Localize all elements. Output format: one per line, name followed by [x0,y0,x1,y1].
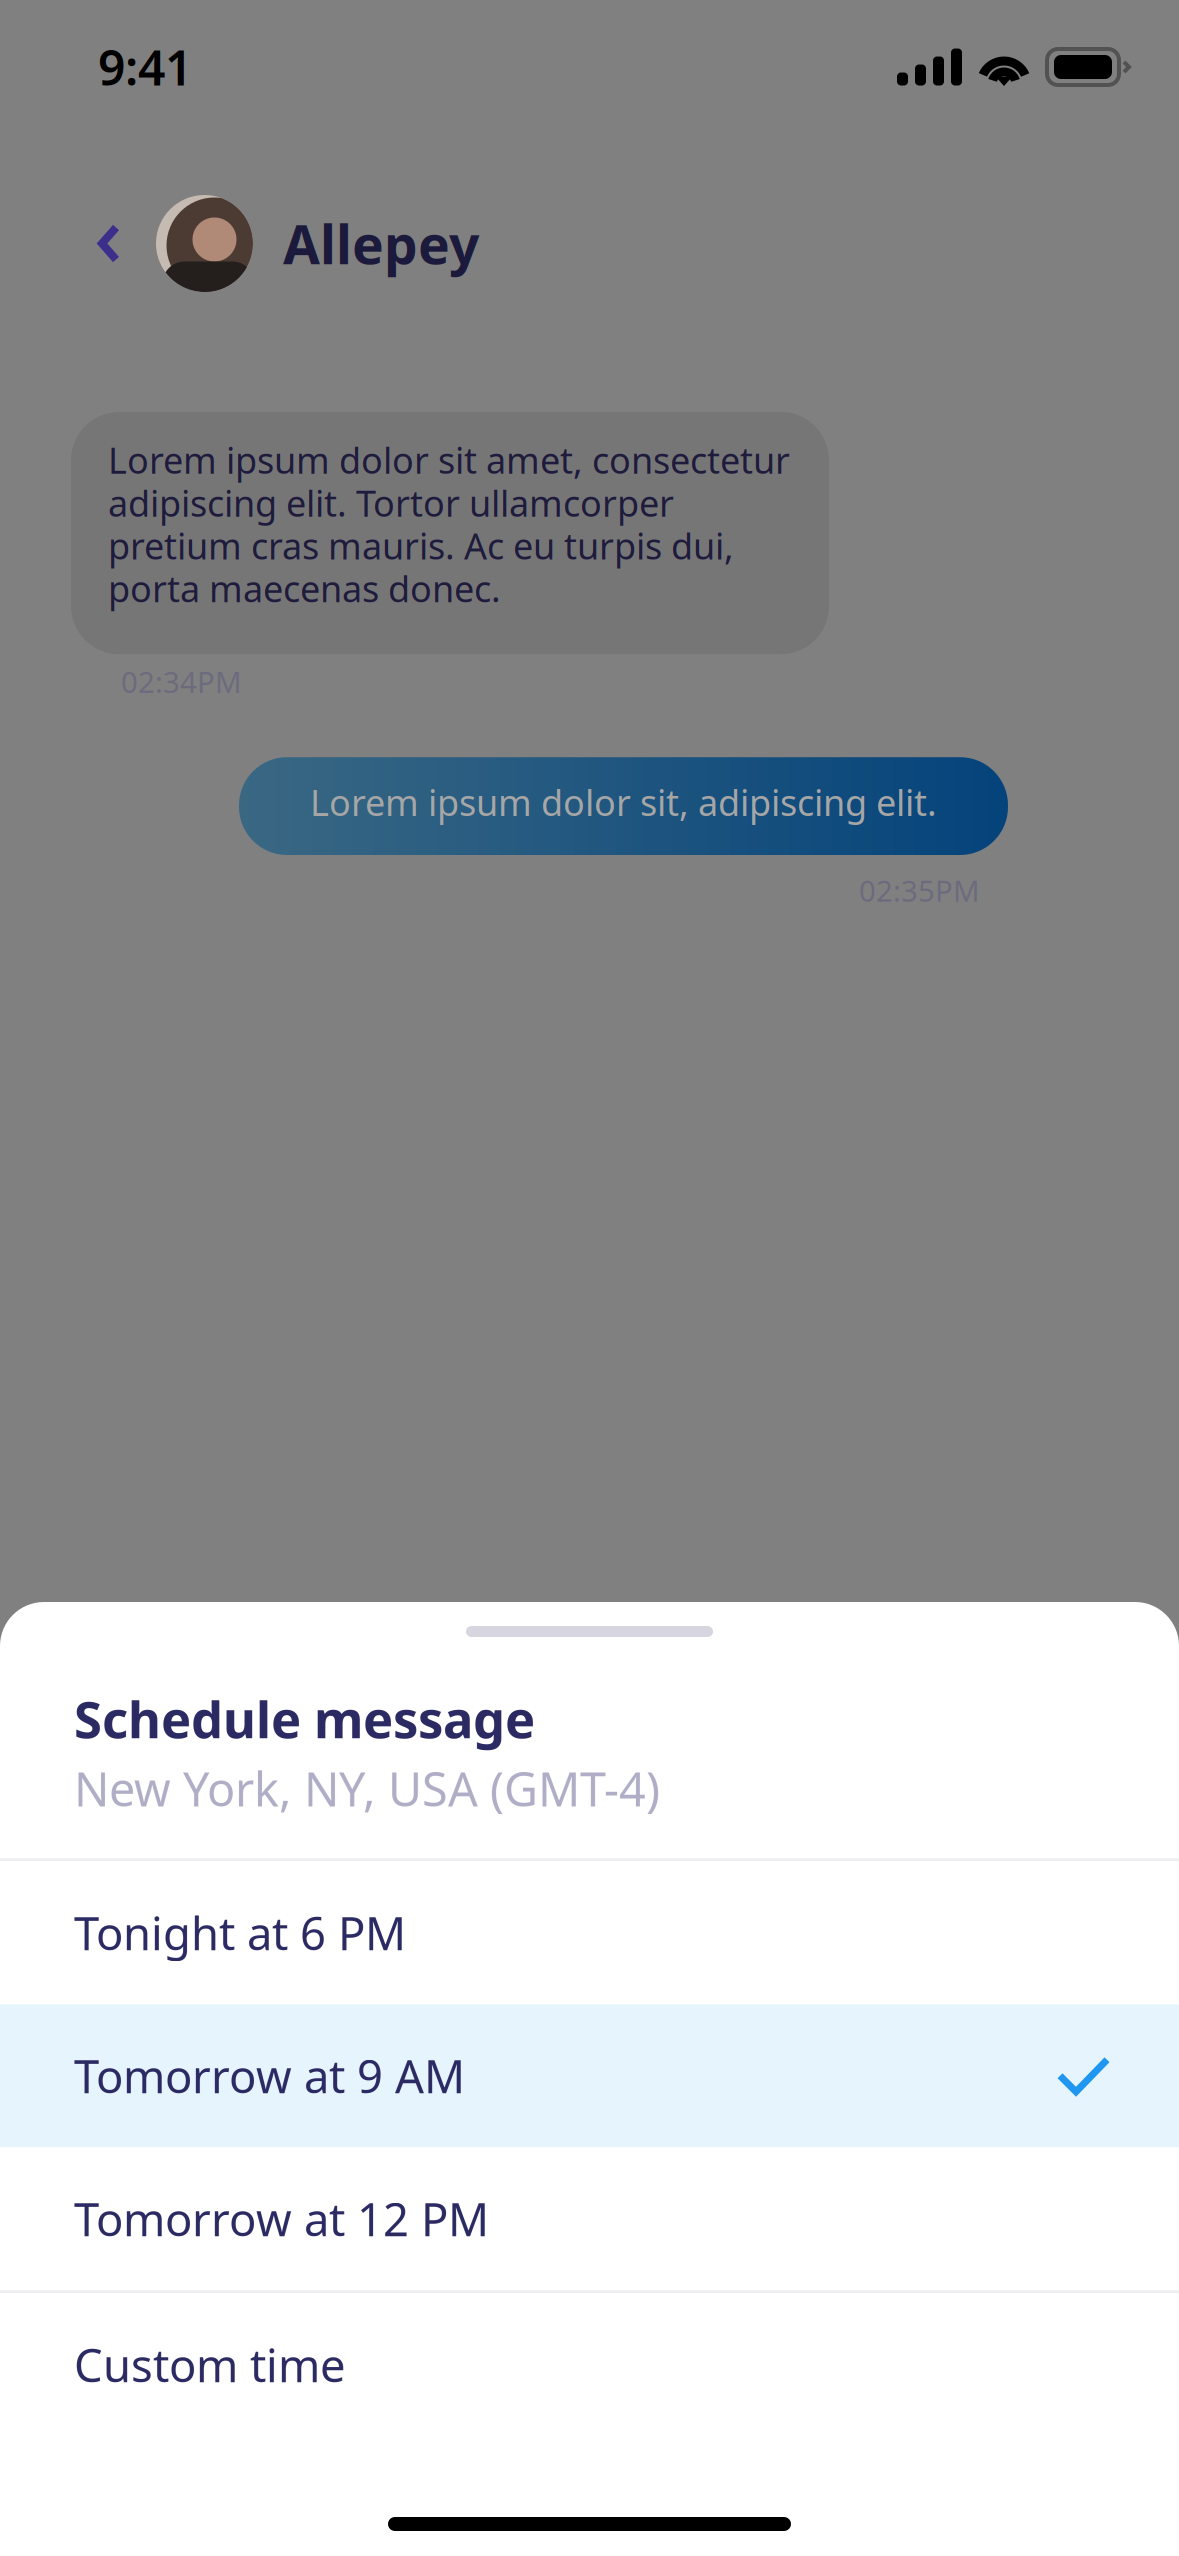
button[interactable]: Back [97,195,156,292]
staticText: Allepey [283,208,479,279]
staticText: 02:35PM [859,871,980,910]
staticText: Lorem ipsum dolor sit amet, consectetur … [108,436,790,612]
button[interactable]: Custom time [0,2293,1179,2436]
staticText: Schedule message [74,1685,535,1752]
button[interactable]: Tomorrow at 9 AM [0,2004,1179,2147]
staticText: Tomorrow at 12 PM [74,2189,489,2249]
staticText: New York, NY, USA (GMT-4) [74,1757,660,1819]
staticText: Lorem ipsum dolor sit, adipiscing elit. [310,778,937,826]
button[interactable]: Tonight at 6 PM [0,1861,1179,2004]
staticText: 9:41 [98,35,192,99]
staticText: Tomorrow at 9 AM [74,2046,465,2106]
button[interactable]: Tomorrow at 12 PM [0,2147,1179,2290]
staticText: 02:34PM [121,662,242,701]
button[interactable]: Allepey [156,195,479,292]
staticText: Tonight at 6 PM [74,1903,406,1963]
staticText: Custom time [74,2335,346,2395]
